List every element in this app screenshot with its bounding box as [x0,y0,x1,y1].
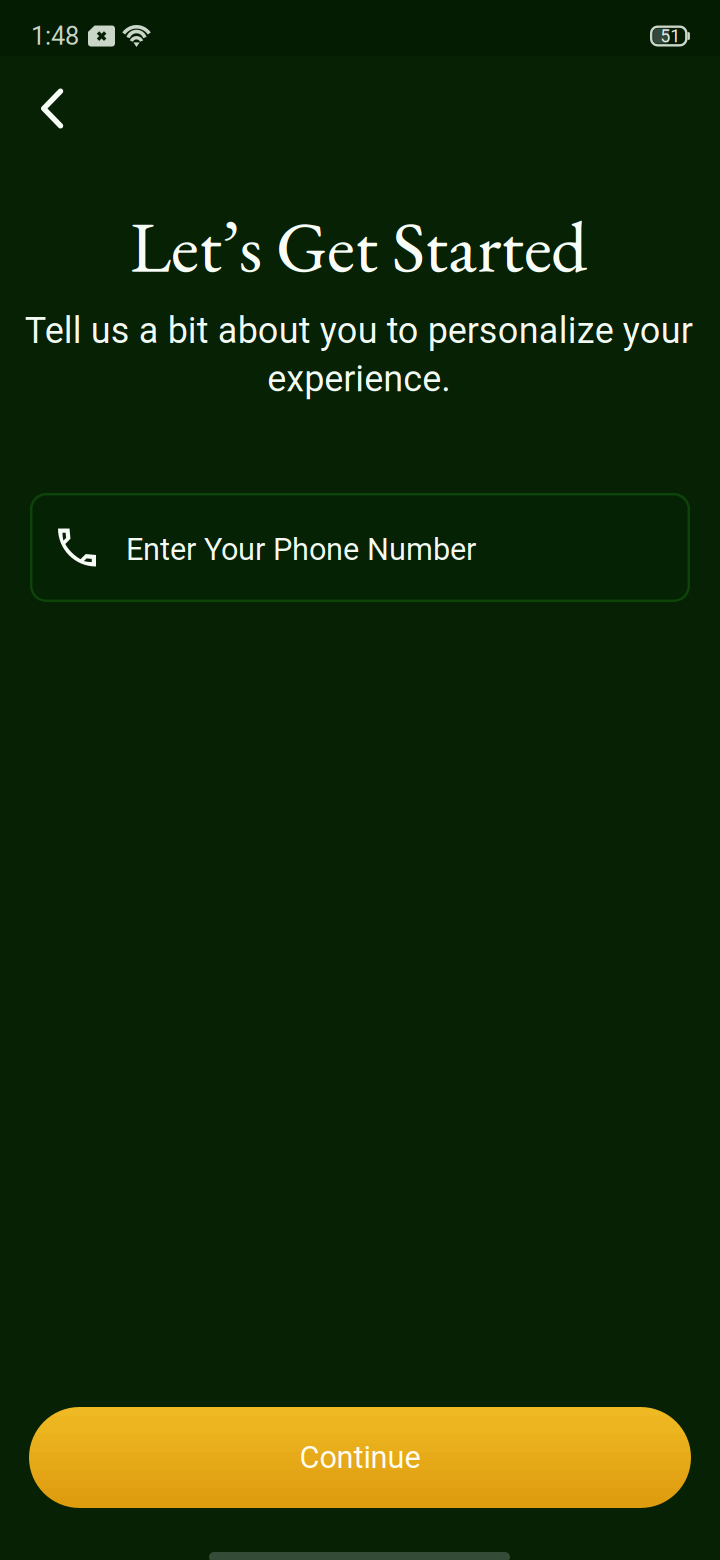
staticText: Enter Your Phone Number [126,531,476,567]
staticText: 1:48 [31,21,79,51]
button[interactable]: Enter Your Phone Number [30,493,690,602]
button[interactable]: Continue [29,1407,691,1508]
staticText: Let’s Get Started [130,200,587,293]
staticText: Tell us a bit about you to personalize y… [24,310,692,400]
staticText: Continue [299,1439,420,1475]
staticText: 51 [660,25,680,47]
button[interactable]: Back [16,72,88,144]
